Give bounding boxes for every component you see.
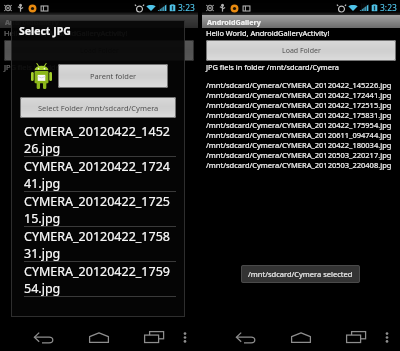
staticText: AndroidGallery [207,17,261,27]
button[interactable]: Select Folder /mnt/sdcard/Cymera [20,97,176,118]
staticText: 54.jpg [24,280,61,297]
button[interactable]: CYMERA_20120422_1759 [24,262,178,297]
staticText: CYMERA_20120422_1452 [24,123,170,140]
staticText: /mnt/sdcard/Cymera selected [248,269,353,279]
staticText: 41.jpg [24,175,61,192]
staticText: Select JPG [19,24,71,38]
staticText: /mnt/sdcard/Cymera/CYMERA_20120422_14522… [206,80,392,90]
staticText: CYMERA_20120422_1759 [24,263,170,280]
button[interactable]: Back [30,325,58,349]
staticText: Hello World, AndroidGalleryActivity! [206,28,330,37]
staticText: CYMERA_20120422_1724 [24,158,170,175]
button[interactable]: More options [378,326,396,348]
staticText: 15.jpg [24,210,61,227]
staticText: Parent folder [90,71,137,81]
button[interactable]: Recent apps [342,325,370,349]
button[interactable]: Home [287,325,315,349]
staticText: Select Folder /mnt/sdcard/Cymera [38,103,159,113]
button[interactable]: CYMERA_20120422_1758 [24,227,178,262]
staticText: /mnt/sdcard/Cymera/CYMERA_20120611_09474… [206,130,392,140]
button[interactable]: Load Folder [206,40,396,61]
staticText: /mnt/sdcard/Cymera/CYMERA_20120422_18003… [206,140,392,150]
button[interactable]: Recent apps [140,325,168,349]
staticText: JPG fiels in folder /mnt/sdcard/Cymera [206,62,339,72]
staticText: CYMERA_20120422_1725 [24,193,170,210]
button[interactable]: Home [85,325,113,349]
button[interactable]: More options [176,326,194,348]
staticText: /mnt/sdcard/Cymera/CYMERA_20120422_17251… [206,100,392,110]
staticText: Load Folder [282,46,321,56]
button[interactable]: CYMERA_20120422_1724 [24,157,178,192]
staticText: CYMERA_20120422_1758 [24,228,170,245]
staticText: /mnt/sdcard/Cymera/CYMERA_20120503_22040… [206,160,392,170]
staticText: JPG fiels in folder /mnt/sdcard/Cymera [4,62,137,72]
staticText: 26.jpg [24,140,61,157]
staticText: /mnt/sdcard/Cymera/CYMERA_20120422_17244… [206,90,392,100]
staticText: /mnt/sdcard/Cymera/CYMERA_20120422_17583… [206,110,392,120]
button[interactable]: CYMERA_20120422_1725 [24,192,178,227]
staticText: /mnt/sdcard/Cymera/CYMERA_20120422_17595… [206,120,392,130]
button[interactable]: Parent folder [58,64,168,88]
staticText: 31.jpg [24,245,61,262]
staticText: Hello World, AndroidGalleryActivity! [4,28,128,37]
staticText: 3:23 [380,2,397,14]
staticText: /mnt/sdcard/Cymera/CYMERA_20120503_22021… [206,150,392,160]
staticText: AndroidGallery [5,17,59,27]
button[interactable]: Load Folder [4,40,194,61]
button[interactable]: CYMERA_20120422_1452 [24,122,178,157]
staticText: 3:23 [178,2,195,14]
button[interactable]: Back [232,325,260,349]
